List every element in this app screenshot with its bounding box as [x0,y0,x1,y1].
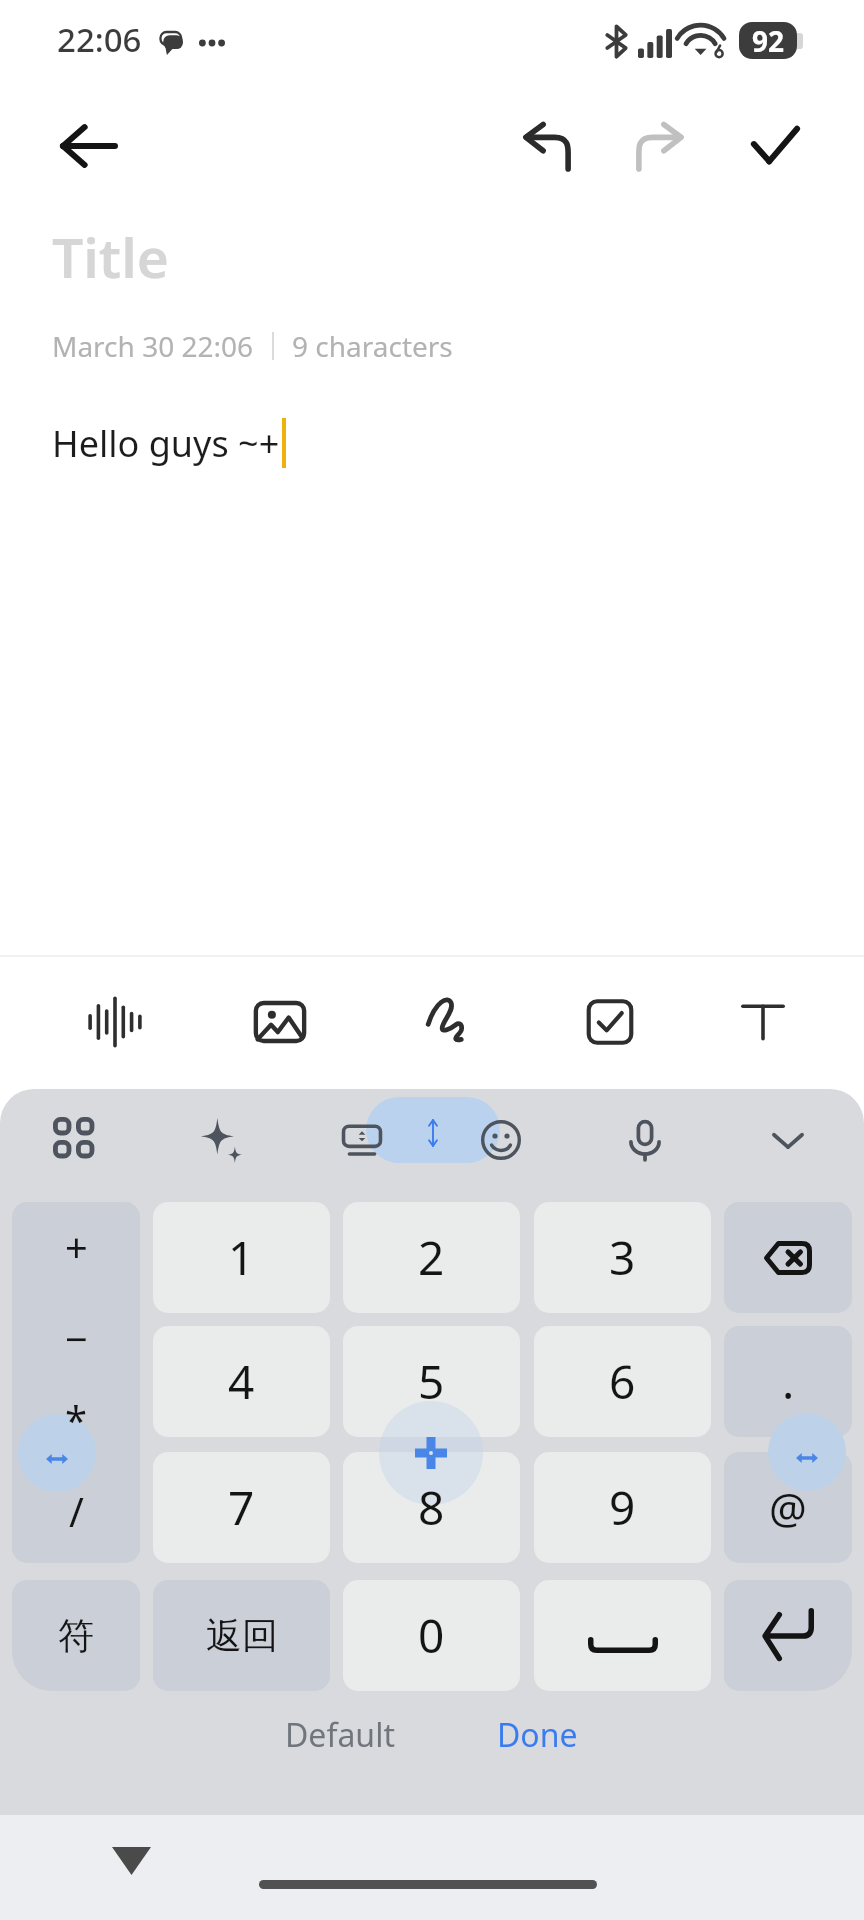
button[interactable]: Resize keyboard [768,1413,846,1491]
staticText: 5 [418,1350,445,1413]
button[interactable]: 4 [153,1326,330,1437]
button[interactable]: 5 [343,1326,520,1437]
button[interactable]: Move keyboard [383,1089,483,1183]
staticText: + [65,1219,88,1273]
staticText: − [65,1311,88,1365]
button[interactable]: 3 [534,1202,711,1313]
button[interactable]: 0 [343,1580,520,1691]
button[interactable]: Symbols [12,1580,140,1691]
button[interactable]: Keyboard layouts [26,1090,126,1190]
button[interactable]: 9 [534,1452,711,1563]
staticText: 7 [228,1476,255,1539]
button[interactable]: Move keyboard [379,1401,483,1505]
button[interactable]: Hide keyboard [91,1821,171,1901]
button[interactable]: Text style [708,967,818,1077]
button[interactable]: . [724,1326,852,1437]
button[interactable]: Redo [616,102,704,190]
staticText: 6 [609,1350,636,1413]
staticText: 0 [418,1604,445,1667]
staticText: Title [52,219,169,294]
button[interactable]: Done [471,1699,604,1771]
button[interactable]: Save [731,102,819,190]
button[interactable]: Return [153,1580,330,1691]
button[interactable]: 1 [153,1202,330,1313]
button[interactable]: Resize keyboard [18,1414,96,1492]
staticText: 2 [418,1226,445,1289]
staticText: Default [285,1713,395,1757]
button[interactable]: 2 [343,1202,520,1313]
staticText: . [782,1350,795,1413]
staticText: 4 [228,1350,255,1413]
staticText: 返回 [206,1613,278,1658]
staticText: @ [769,1479,807,1536]
staticText: 92 [752,22,785,59]
button[interactable]: @ [724,1452,852,1563]
button[interactable]: Audio [60,967,170,1077]
button[interactable]: 7 [153,1452,330,1563]
button[interactable]: Voice input [595,1090,695,1190]
button[interactable]: Operators [12,1202,140,1563]
staticText: * [65,1392,88,1446]
staticText: Done [497,1713,578,1757]
staticText: 8 [418,1476,445,1539]
button[interactable]: 8 [343,1452,520,1563]
button[interactable]: Backspace [724,1202,852,1313]
staticText: March 30 22:06 [52,327,254,365]
button[interactable]: Handwriting [390,967,500,1077]
button[interactable]: Hide keyboard [738,1090,838,1190]
button[interactable]: Image [225,967,335,1077]
button[interactable]: Back [42,100,134,192]
button[interactable]: AI assist [172,1090,272,1190]
button[interactable]: Emoji [451,1090,551,1190]
staticText: 9 characters [292,327,453,365]
staticText: 3 [609,1226,636,1289]
button[interactable]: Space [534,1580,711,1691]
button[interactable]: Checklist [555,967,665,1077]
button[interactable]: Keyboard mode [312,1089,412,1188]
staticText: / [69,1484,84,1538]
staticText: 9 [609,1476,636,1539]
button[interactable]: 6 [534,1326,711,1437]
staticText: 22:06 [57,17,142,62]
staticText: 符 [58,1613,94,1658]
button[interactable]: Undo [503,102,591,190]
button[interactable]: Enter [724,1580,852,1691]
button[interactable]: Default [259,1699,421,1771]
staticText: Hello guys ~+ [52,419,280,468]
staticText: 1 [228,1226,255,1289]
